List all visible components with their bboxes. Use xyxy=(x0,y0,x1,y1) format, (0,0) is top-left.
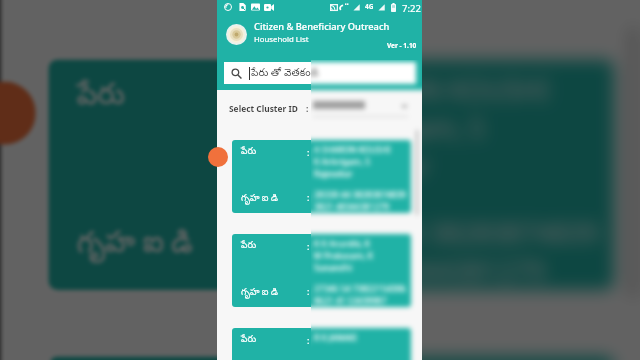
staticText: పేరు xyxy=(241,146,257,158)
staticText: : xyxy=(285,221,295,258)
staticText: Sunandhi xyxy=(314,262,352,274)
button[interactable]: పేరు xyxy=(232,328,411,360)
staticText: : xyxy=(307,334,310,346)
staticText: పేరు xyxy=(77,78,127,116)
staticText: 28338 44 38283874839 xyxy=(314,189,406,201)
button[interactable]: పేరు xyxy=(48,356,614,360)
other: Search xyxy=(231,68,242,79)
staticText: 7:22 xyxy=(402,2,421,15)
button[interactable]: Select Cluster ID xyxy=(1,0,640,12)
staticText: : xyxy=(306,103,309,114)
staticText: Rajesekar xyxy=(307,148,431,186)
staticText: 4G xyxy=(365,2,374,11)
staticText: : xyxy=(307,285,310,297)
button[interactable]: Search xyxy=(224,62,416,84)
staticText: గృహ ఐ డి xyxy=(241,285,278,299)
button[interactable]: Select Cluster ID xyxy=(217,90,422,125)
staticText: గృహ ఐ డి xyxy=(241,191,278,205)
staticText: 27346 54 73822154306 xyxy=(314,283,406,295)
button[interactable]: Select Cluster ID xyxy=(1,0,640,12)
staticText: Rajesekar xyxy=(314,168,353,180)
staticText: గృహ ఐ డి xyxy=(241,191,278,205)
staticText: Citizen & Beneficiary Outreach xyxy=(254,20,390,33)
staticText: 4G xyxy=(365,2,374,11)
staticText: : xyxy=(307,146,310,158)
staticText: A SHARON KOUSHI xyxy=(307,72,551,110)
button[interactable]: Select Cluster ID xyxy=(217,90,422,125)
staticText: Select Cluster ID xyxy=(229,103,298,114)
staticText: Rajesekar xyxy=(307,148,431,186)
button[interactable]: Search xyxy=(224,62,416,84)
staticText: : xyxy=(306,103,309,114)
staticText: Ver - 1.10 xyxy=(387,41,417,50)
staticText: 7:22 xyxy=(402,2,421,15)
staticText: K Arikrigam, S xyxy=(314,156,370,168)
staticText: A SHARON KOUSHI xyxy=(307,72,551,110)
staticText: K Arikrigam, S xyxy=(307,110,484,148)
staticText: : xyxy=(307,191,310,203)
staticText: పేరు తో వెతకండి xyxy=(251,65,319,81)
button[interactable]: పేరు xyxy=(232,328,411,360)
button[interactable]: Add household xyxy=(0,81,36,145)
staticText: పేరు xyxy=(77,78,127,116)
staticText: 3821 48344381279 xyxy=(307,252,548,290)
staticText: 8621 41 53439987 xyxy=(314,295,387,307)
staticText: R K JANAKI xyxy=(314,332,357,344)
staticText: Household List xyxy=(254,34,309,45)
staticText: పేరు xyxy=(241,240,257,252)
staticText: Household List xyxy=(254,34,309,45)
staticText: గృహ ఐ డి xyxy=(77,221,194,265)
staticText: పేరు xyxy=(241,334,257,346)
staticText: 28338 44 38283874839 xyxy=(307,214,598,252)
staticText: K K Ananthi, K xyxy=(314,238,370,250)
staticText: : xyxy=(307,334,310,346)
staticText: K Arikrigam, S xyxy=(307,110,484,148)
staticText: పేరు తో వెతకండి xyxy=(251,65,319,81)
staticText: K Arikrigam, S xyxy=(314,156,370,168)
staticText: Citizen & Beneficiary Outreach xyxy=(254,20,390,33)
staticText: : xyxy=(285,221,295,258)
staticText: : xyxy=(285,78,295,116)
staticText: 8621 41 53439987 xyxy=(314,295,387,307)
staticText: పేరు xyxy=(241,146,257,158)
button[interactable]: పేరు xyxy=(232,140,411,213)
staticText: 3821 48344381279 xyxy=(314,201,390,213)
staticText: : xyxy=(307,146,310,158)
staticText: Rajesekar xyxy=(314,168,353,180)
staticText: : xyxy=(307,191,310,203)
button[interactable]: పేరు xyxy=(232,140,411,213)
staticText: 28338 44 38283874839 xyxy=(314,189,406,201)
staticText: 27346 54 73822154306 xyxy=(314,283,406,295)
staticText: A SHARON KOUSHI xyxy=(314,144,391,156)
button[interactable]: పేరు xyxy=(48,356,614,360)
other: Search xyxy=(231,68,242,79)
staticText: Select Cluster ID xyxy=(229,103,298,114)
button[interactable]: పేరు xyxy=(48,59,614,290)
staticText: పేరు xyxy=(241,334,257,346)
staticText: Ver - 1.10 xyxy=(387,41,417,50)
staticText: 28338 44 38283874839 xyxy=(307,214,598,252)
button[interactable]: Add household xyxy=(208,147,228,167)
staticText: : xyxy=(285,78,295,116)
staticText: M Prakasam, K xyxy=(314,250,374,262)
staticText: : xyxy=(307,240,310,252)
staticText: గృహ ఐ డి xyxy=(241,285,278,299)
button[interactable]: పేరు xyxy=(232,234,411,307)
staticText: R K JANAKI xyxy=(314,332,357,344)
staticText: 3821 48344381279 xyxy=(307,252,548,290)
button[interactable]: Add household xyxy=(0,81,36,145)
staticText: M Prakasam, K xyxy=(314,250,374,262)
staticText: పేరు xyxy=(241,240,257,252)
button[interactable]: Add household xyxy=(208,147,228,167)
staticText: 3821 48344381279 xyxy=(314,201,390,213)
staticText: Sunandhi xyxy=(314,262,352,274)
staticText: : xyxy=(307,285,310,297)
staticText: K K Ananthi, K xyxy=(314,238,370,250)
staticText: : xyxy=(307,240,310,252)
staticText: గృహ ఐ డి xyxy=(77,221,194,265)
button[interactable]: పేరు xyxy=(232,234,411,307)
button[interactable]: పేరు xyxy=(48,59,614,290)
staticText: A SHARON KOUSHI xyxy=(314,144,391,156)
